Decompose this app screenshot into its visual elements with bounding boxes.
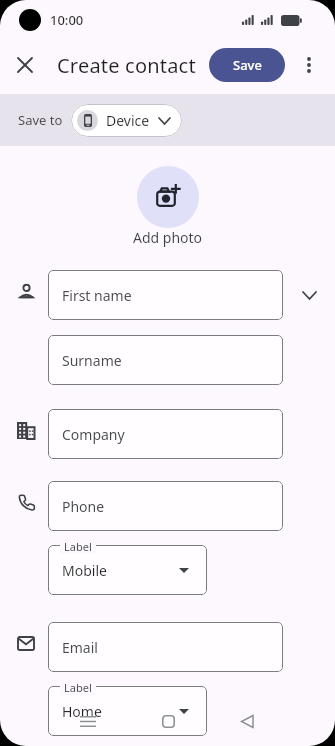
button[interactable] <box>227 702 267 740</box>
staticText: First name <box>62 286 132 305</box>
button[interactable]: Mobile <box>48 545 207 595</box>
staticText: Save <box>233 56 262 74</box>
button[interactable]: Company <box>48 409 283 459</box>
button[interactable]: Email <box>48 622 283 672</box>
staticText: Device <box>106 111 150 130</box>
button[interactable]: Device <box>71 104 182 137</box>
button[interactable]: First name <box>48 270 283 320</box>
staticText: Phone <box>62 497 105 516</box>
button[interactable] <box>137 166 199 228</box>
staticText: Company <box>62 425 125 444</box>
button[interactable]: Save <box>209 48 285 82</box>
button[interactable]: Home <box>48 686 207 736</box>
staticText: 10:00 <box>50 11 84 29</box>
staticText: Home <box>62 702 102 721</box>
button[interactable] <box>283 270 335 320</box>
staticText: Save to <box>18 111 63 129</box>
staticText: Label <box>64 539 92 554</box>
button[interactable] <box>68 702 108 740</box>
button[interactable] <box>8 48 42 82</box>
button[interactable]: Phone <box>48 481 283 531</box>
staticText: Email <box>62 638 98 657</box>
button[interactable] <box>291 47 327 83</box>
staticText: Mobile <box>62 561 107 580</box>
staticText: Create contact <box>57 52 196 79</box>
staticText: Surname <box>62 351 122 370</box>
button[interactable]: Surname <box>48 335 283 385</box>
button[interactable] <box>148 702 188 740</box>
staticText: Label <box>64 680 92 695</box>
staticText: Add photo <box>133 228 203 247</box>
